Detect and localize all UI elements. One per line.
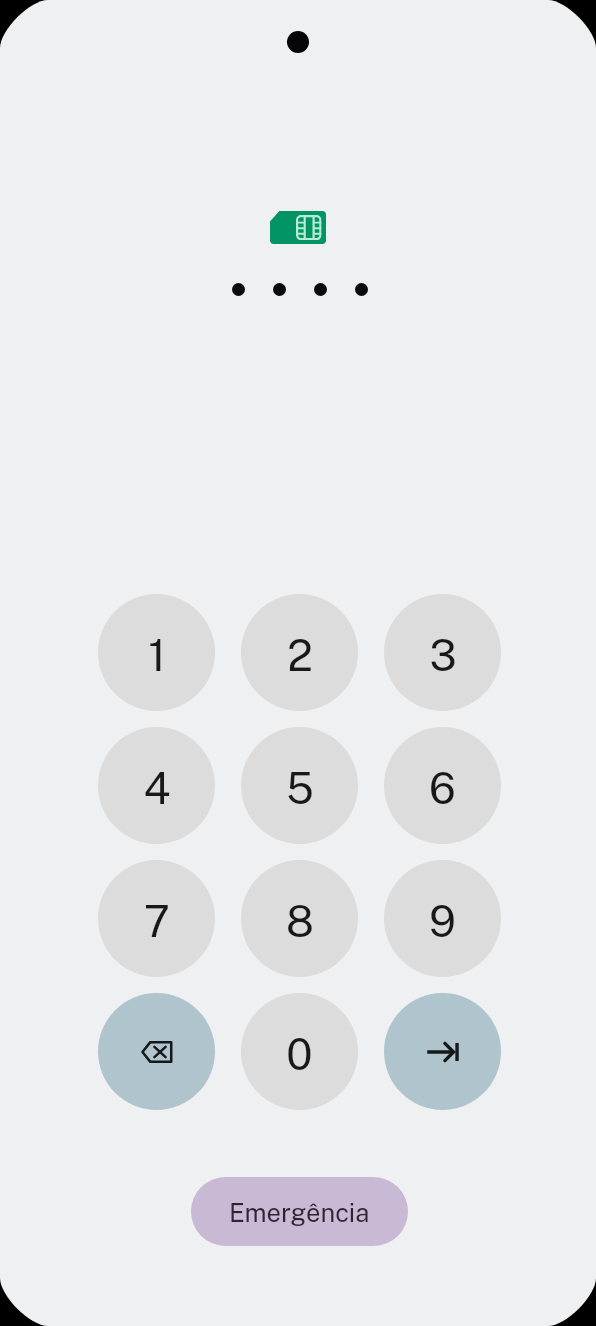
staticText: 4 [143,763,171,814]
button[interactable]: 2 [241,594,358,711]
button[interactable]: Backspace [98,993,215,1110]
button[interactable]: Enter [384,993,501,1110]
button[interactable]: 4 [98,727,215,844]
button[interactable]: 8 [241,860,358,977]
staticText: 8 [286,896,314,947]
staticText: 1 [148,630,166,681]
staticText: 5 [286,763,314,814]
button[interactable]: 5 [241,727,358,844]
button[interactable]: 9 [384,860,501,977]
staticText: 9 [429,896,456,947]
staticText: Emergência [229,1198,370,1228]
button[interactable]: 7 [98,860,215,977]
button[interactable]: 6 [384,727,501,844]
button[interactable]: 0 [241,993,358,1110]
staticText: 0 [286,1029,313,1080]
button[interactable]: 1 [98,594,215,711]
button[interactable]: 3 [384,594,501,711]
staticText: 7 [144,896,170,947]
staticText: 3 [429,630,457,681]
staticText: 6 [429,763,456,814]
button[interactable]: Emergência [191,1177,408,1246]
staticText: 2 [287,630,313,681]
